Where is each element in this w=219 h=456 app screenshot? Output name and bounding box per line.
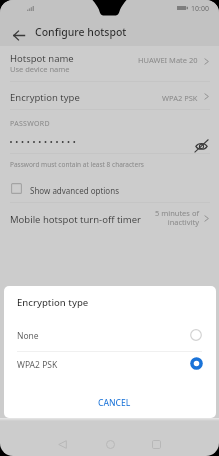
staticText: Configure hotspot [35,25,127,39]
button[interactable]: CANCEL [90,393,139,413]
staticText: WPA2 PSK [162,93,198,103]
staticText: Encryption type [17,296,89,309]
button[interactable]: Mobile hotspot turn-off timer [0,203,219,236]
button[interactable]: Show advanced options [0,176,219,202]
staticText: Encryption type [10,91,80,104]
staticText: WPA2 PSK [17,359,58,371]
staticText: None [17,330,39,342]
button[interactable]: Recent apps [141,429,171,456]
button[interactable]: Back [5,21,33,49]
button[interactable]: Hotspot name [0,46,219,81]
staticText: Show advanced options [30,185,119,196]
staticText: 10:00 [191,4,209,14]
staticText: CANCEL [98,397,131,409]
button[interactable]: WPA2 PSK [4,351,216,379]
staticText: HUAWEI Mate 20 [138,55,198,65]
staticText: PASSWORD [10,119,50,129]
button[interactable]: Show password [191,135,211,155]
button[interactable]: Encryption type [0,82,219,109]
staticText: Hotspot name [10,52,74,65]
button[interactable]: None [4,322,216,350]
staticText: Mobile hotspot turn-off timer [10,213,141,226]
staticText: Password must contain at least 8 charact… [10,160,144,169]
staticText: 5 minutes of inactivity [140,208,199,228]
staticText: Use device name [10,64,70,74]
